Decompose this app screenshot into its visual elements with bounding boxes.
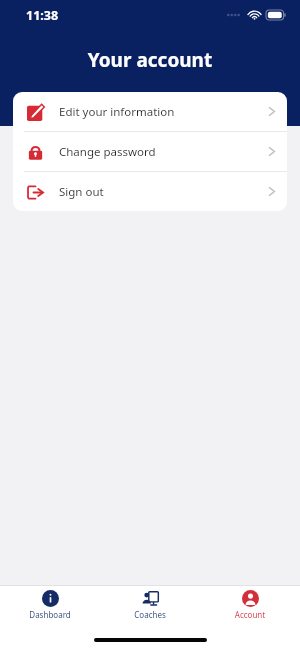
other: Coaches — [142, 590, 159, 607]
button[interactable]: Edit your information — [13, 92, 287, 131]
staticText: Account — [207, 609, 293, 620]
staticText: 11:38 — [26, 7, 59, 24]
button[interactable]: Sign out — [13, 172, 287, 211]
staticText: Your account — [0, 47, 300, 73]
staticText: Edit your information — [59, 104, 268, 120]
staticText: Coaches — [107, 609, 193, 620]
staticText: Change password — [59, 144, 268, 160]
button[interactable]: Dashboard — [7, 586, 93, 620]
staticText: Dashboard — [7, 609, 93, 620]
staticText: Sign out — [59, 184, 268, 200]
other: Account — [242, 590, 259, 607]
button[interactable]: Change password — [13, 132, 287, 171]
other: Dashboard — [42, 590, 59, 607]
button[interactable]: Coaches — [107, 586, 193, 620]
button[interactable]: Account — [207, 586, 293, 620]
